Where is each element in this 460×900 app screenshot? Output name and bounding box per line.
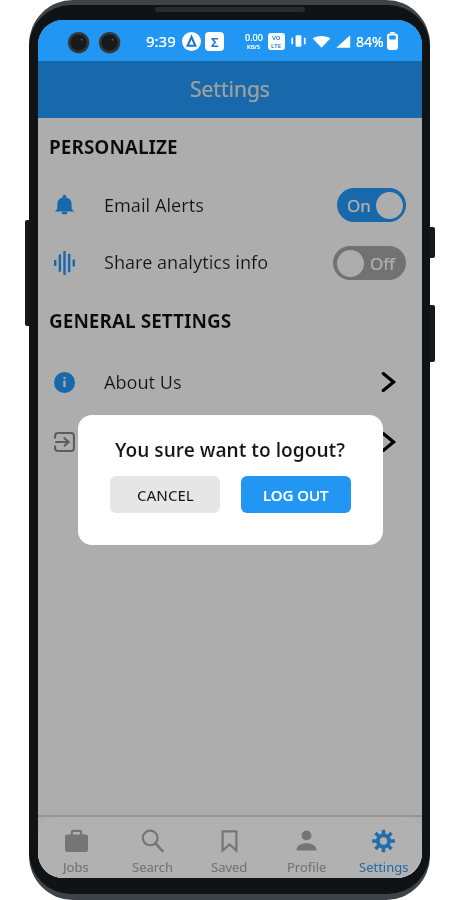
button[interactable]: Profile bbox=[268, 830, 345, 876]
staticText: Off bbox=[370, 252, 395, 275]
staticText: 84% bbox=[356, 32, 384, 51]
button[interactable]: On bbox=[337, 188, 406, 222]
button[interactable]: LOG OUT bbox=[241, 476, 351, 513]
staticText: 0.00 bbox=[245, 31, 263, 43]
button[interactable]: Settings bbox=[345, 830, 422, 876]
button[interactable]: Saved bbox=[191, 830, 268, 876]
staticText: Saved bbox=[211, 858, 248, 876]
other: Open bbox=[381, 372, 395, 392]
staticText: 0.00 bbox=[245, 31, 263, 43]
staticText: KB/S bbox=[247, 43, 261, 51]
button[interactable]: Search bbox=[114, 830, 191, 876]
staticText: GENERAL SETTINGS bbox=[49, 308, 232, 334]
staticText: KB/S bbox=[247, 43, 261, 51]
staticText: Σ bbox=[211, 33, 219, 51]
button[interactable]: CANCEL bbox=[110, 476, 220, 513]
button[interactable]: Off bbox=[333, 246, 406, 280]
staticText: Email Alerts bbox=[104, 193, 204, 218]
staticText: About Us bbox=[104, 370, 182, 395]
staticText: Settings bbox=[190, 75, 270, 104]
staticText: VO bbox=[272, 34, 281, 42]
button[interactable]: About Us bbox=[38, 351, 422, 413]
staticText: 9:39 bbox=[146, 31, 176, 51]
staticText: Search bbox=[132, 858, 174, 876]
staticText: LTE bbox=[271, 42, 282, 50]
button[interactable]: Email Alerts bbox=[38, 176, 422, 234]
staticText: Jobs bbox=[63, 858, 89, 876]
staticText: 9:39 bbox=[146, 31, 176, 51]
staticText: Share analytics info bbox=[104, 250, 269, 275]
button[interactable]: Logout bbox=[38, 413, 422, 471]
staticText: Logout bbox=[104, 430, 164, 455]
button[interactable]: Share analytics info bbox=[38, 234, 422, 291]
staticText: LTE bbox=[271, 42, 282, 50]
staticText: Settings bbox=[359, 858, 409, 876]
staticText: PERSONALIZE bbox=[49, 134, 178, 160]
staticText: CANCEL bbox=[137, 485, 194, 505]
staticText: 84% bbox=[356, 32, 384, 51]
staticText: VO bbox=[272, 34, 281, 42]
staticText: On bbox=[347, 194, 371, 217]
button[interactable]: Jobs bbox=[38, 830, 114, 876]
staticText: Profile bbox=[287, 858, 327, 876]
staticText: LOG OUT bbox=[263, 485, 329, 505]
other: Open bbox=[381, 432, 395, 452]
staticText: You sure want to logout? bbox=[115, 437, 346, 463]
staticText: Σ bbox=[211, 33, 219, 51]
